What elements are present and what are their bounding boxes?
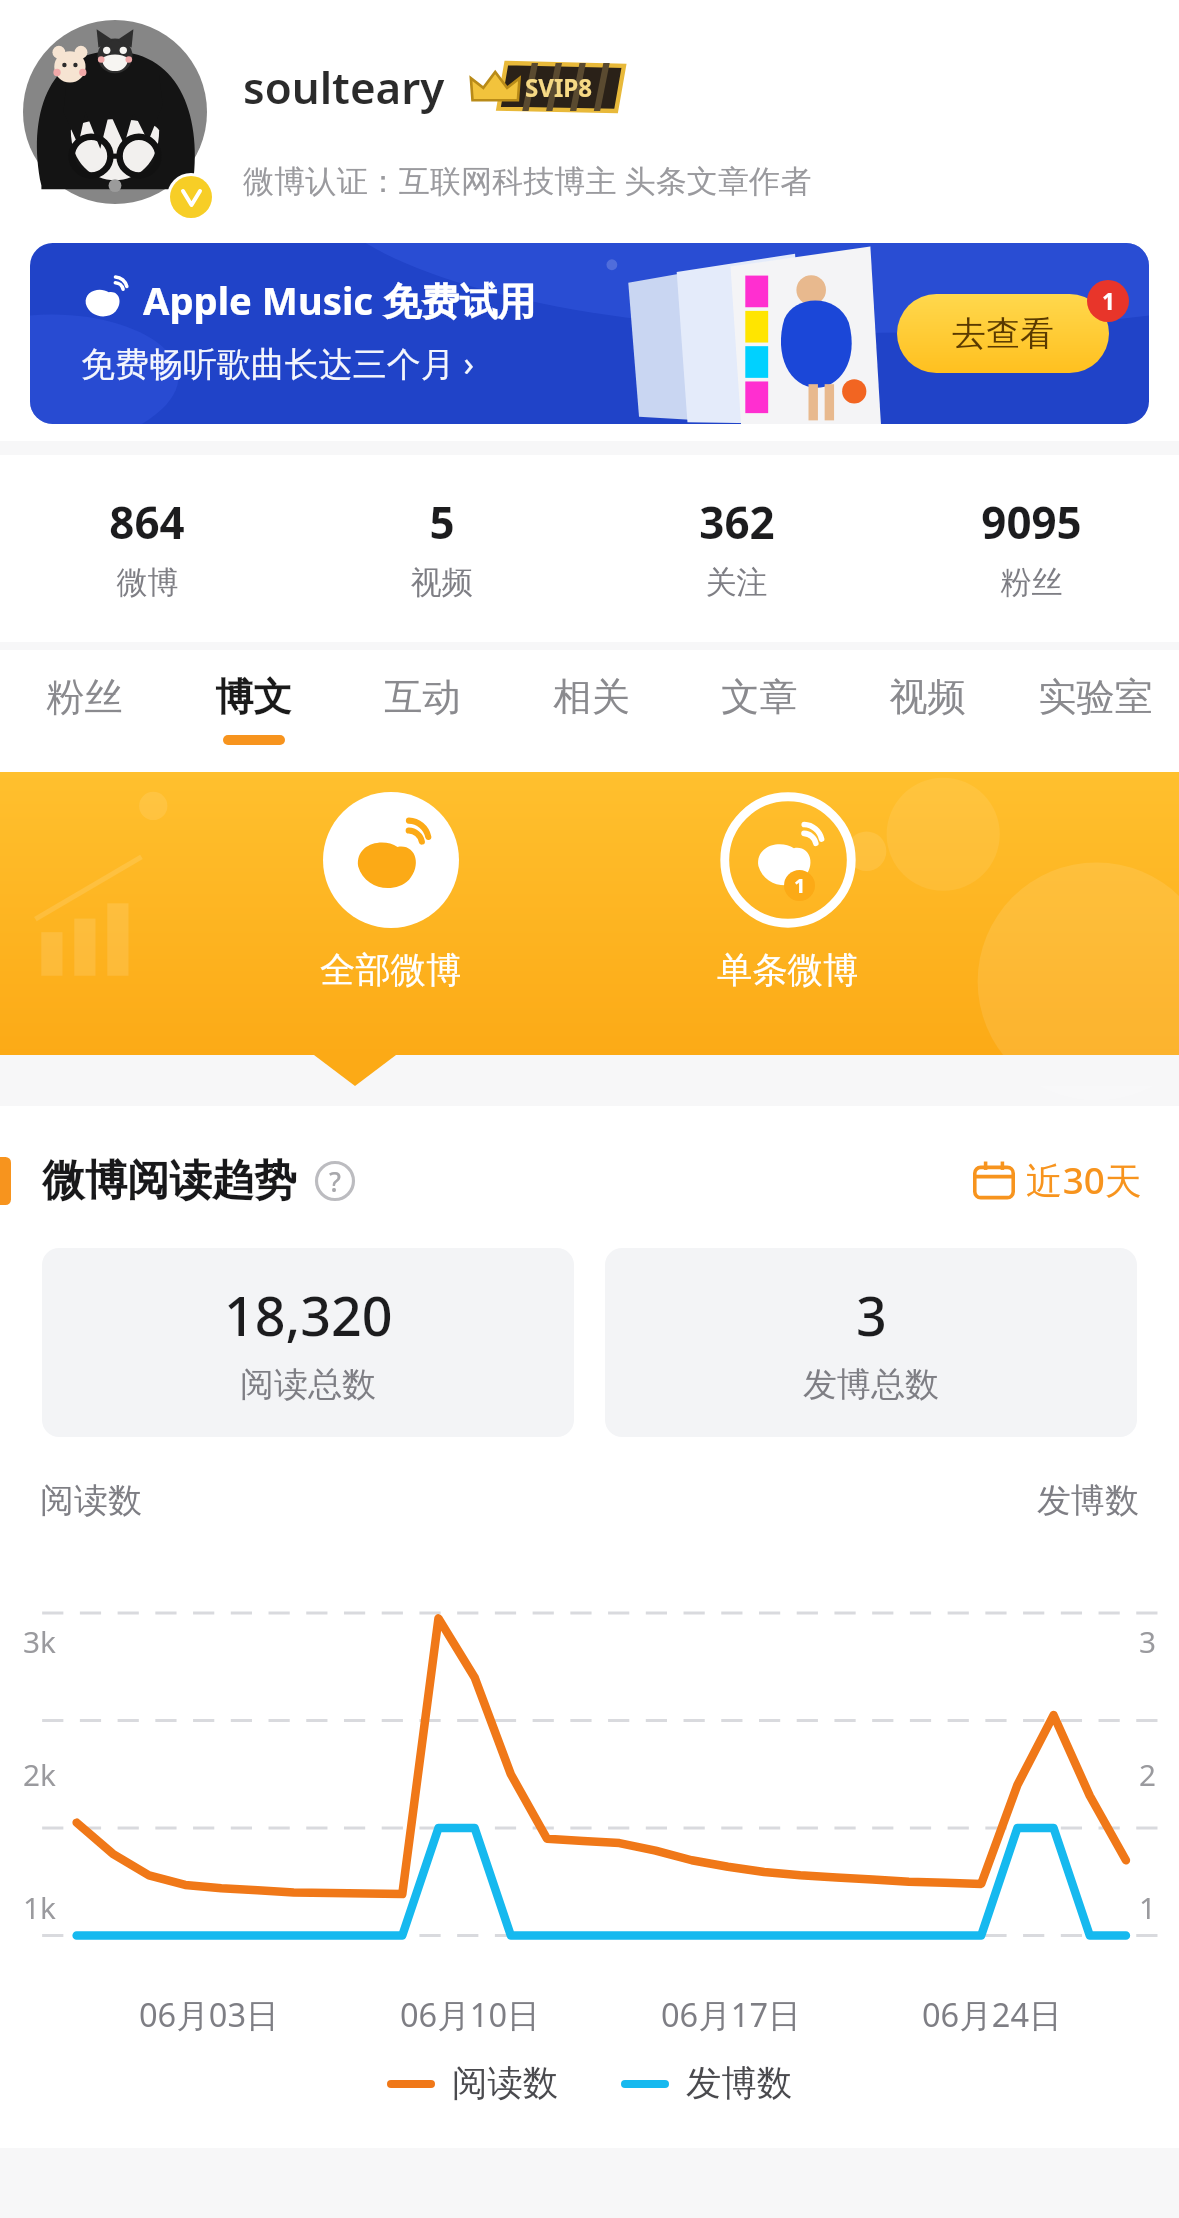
staticText: 视频 [410,563,473,602]
staticText: 视频 [889,673,966,721]
staticText: 1k [23,1887,56,1927]
staticText: 近30天 [1026,1155,1142,1205]
button[interactable]: 实验室 [1011,673,1179,735]
staticText: Apple Music 免费试用 [143,274,536,326]
staticText: 粉丝 [46,673,123,721]
staticText: 微博 [116,563,179,602]
staticText: 单条微博 [717,948,859,993]
staticText: 06月03日 [139,1992,279,2036]
staticText: 1 [1102,286,1115,317]
button[interactable]: 相关 [507,673,675,735]
button[interactable]: Apple Music 免费试用 [30,243,1149,424]
staticText: 发博总数 [803,1363,939,1406]
button[interactable]: 视频 [843,673,1011,735]
button[interactable]: SVIP8 会员等级 [465,63,624,111]
button[interactable]: 1 [717,792,859,993]
staticText: 免费畅听歌曲长达三个月 › [81,340,475,386]
staticText: 阅读数 [452,2061,559,2106]
button[interactable]: 去查看 [897,294,1109,373]
staticText: 阅读总数 [240,1363,376,1406]
button[interactable]: 3 [605,1248,1137,1437]
button[interactable]: 362 [589,492,884,602]
staticText: 文章 [721,673,798,721]
button[interactable]: 近30天 [973,1155,1142,1205]
staticText: 1 [1139,1887,1156,1927]
staticText: 9095 [981,492,1082,552]
button[interactable]: 博文 [169,673,338,745]
staticText: 18,320 [224,1279,393,1352]
staticText: 粉丝 [1000,563,1063,602]
staticText: 06月17日 [661,1992,801,2036]
button[interactable]: soulteary [243,57,624,117]
staticText: 1 [794,872,806,899]
button[interactable]: 全部微博 [320,792,462,993]
staticText: ? [329,1163,342,1200]
staticText: 2k [23,1754,56,1794]
staticText: 06月24日 [922,1992,1062,2036]
staticText: 互动 [384,673,461,721]
staticText: soulteary [243,57,445,117]
staticText: 3k [23,1621,56,1661]
staticText: 2 [1139,1754,1156,1794]
staticText: 发博数 [686,2061,793,2106]
button[interactable]: 18,320 [42,1248,574,1437]
staticText: SVIP8 [525,71,592,104]
button[interactable]: 5 [294,492,589,602]
button[interactable]: 864 [0,492,294,602]
staticText: 发博数 [1037,1479,1139,1522]
staticText: 全部微博 [320,948,462,993]
staticText: 微博认证：互联网科技博主 头条文章作者 [243,159,812,202]
staticText: 关注 [705,563,768,602]
staticText: 微博阅读趋势 [42,1154,297,1207]
staticText: 362 [699,492,775,552]
button[interactable]: 粉丝 [0,673,169,735]
button[interactable]: 帮助说明 [314,1160,356,1202]
staticText: 3 [1139,1621,1156,1661]
staticText: 阅读数 [40,1479,142,1522]
staticText: 3 [856,1279,887,1352]
staticText: 864 [109,492,185,552]
button[interactable]: 文章 [675,673,843,735]
staticText: 06月10日 [400,1992,540,2036]
button[interactable]: 阅读数 [387,2061,559,2106]
staticText: 实验室 [1038,673,1153,721]
button[interactable]: 发博数 [621,2061,793,2106]
button[interactable]: 互动 [338,673,507,735]
staticText: 博文 [215,673,292,721]
staticText: 5 [429,492,455,552]
staticText: 去查看 [952,312,1054,355]
staticText: 相关 [553,673,630,721]
button[interactable]: 9095 [884,492,1179,602]
